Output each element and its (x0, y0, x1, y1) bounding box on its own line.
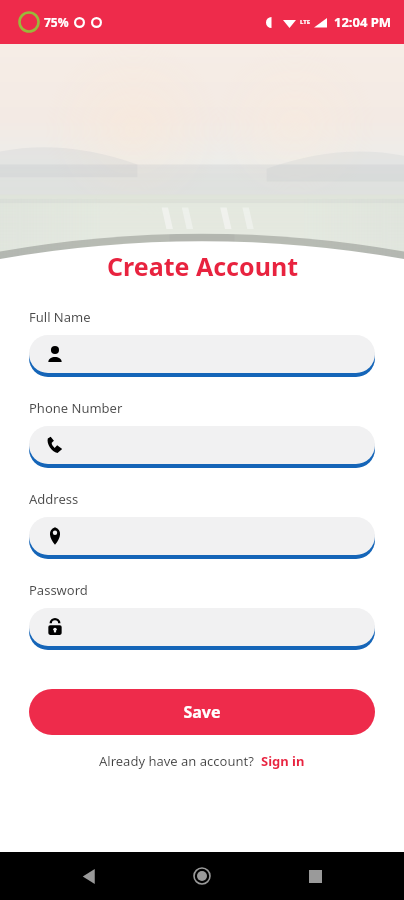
staticText: LTE (300, 18, 311, 26)
button[interactable] (29, 608, 375, 651)
staticText: Address (29, 490, 79, 508)
staticText: Already have an account? (99, 752, 254, 770)
button[interactable]: Back (65, 852, 113, 900)
button[interactable] (29, 517, 375, 560)
button[interactable]: Save (29, 689, 375, 735)
button[interactable]: Sign in (261, 752, 305, 770)
button[interactable] (29, 335, 375, 378)
staticText: Password (29, 581, 88, 599)
staticText: 12:04 PM (334, 13, 392, 31)
staticText: Phone Number (29, 399, 123, 417)
staticText: Sign in (261, 752, 305, 770)
button[interactable]: Home (178, 852, 226, 900)
staticText: Create Account (107, 249, 298, 283)
staticText: Full Name (29, 308, 91, 326)
button[interactable]: Recent apps (291, 852, 339, 900)
staticText: 75% (44, 14, 69, 30)
button[interactable] (29, 426, 375, 469)
staticText: Save (183, 701, 221, 723)
